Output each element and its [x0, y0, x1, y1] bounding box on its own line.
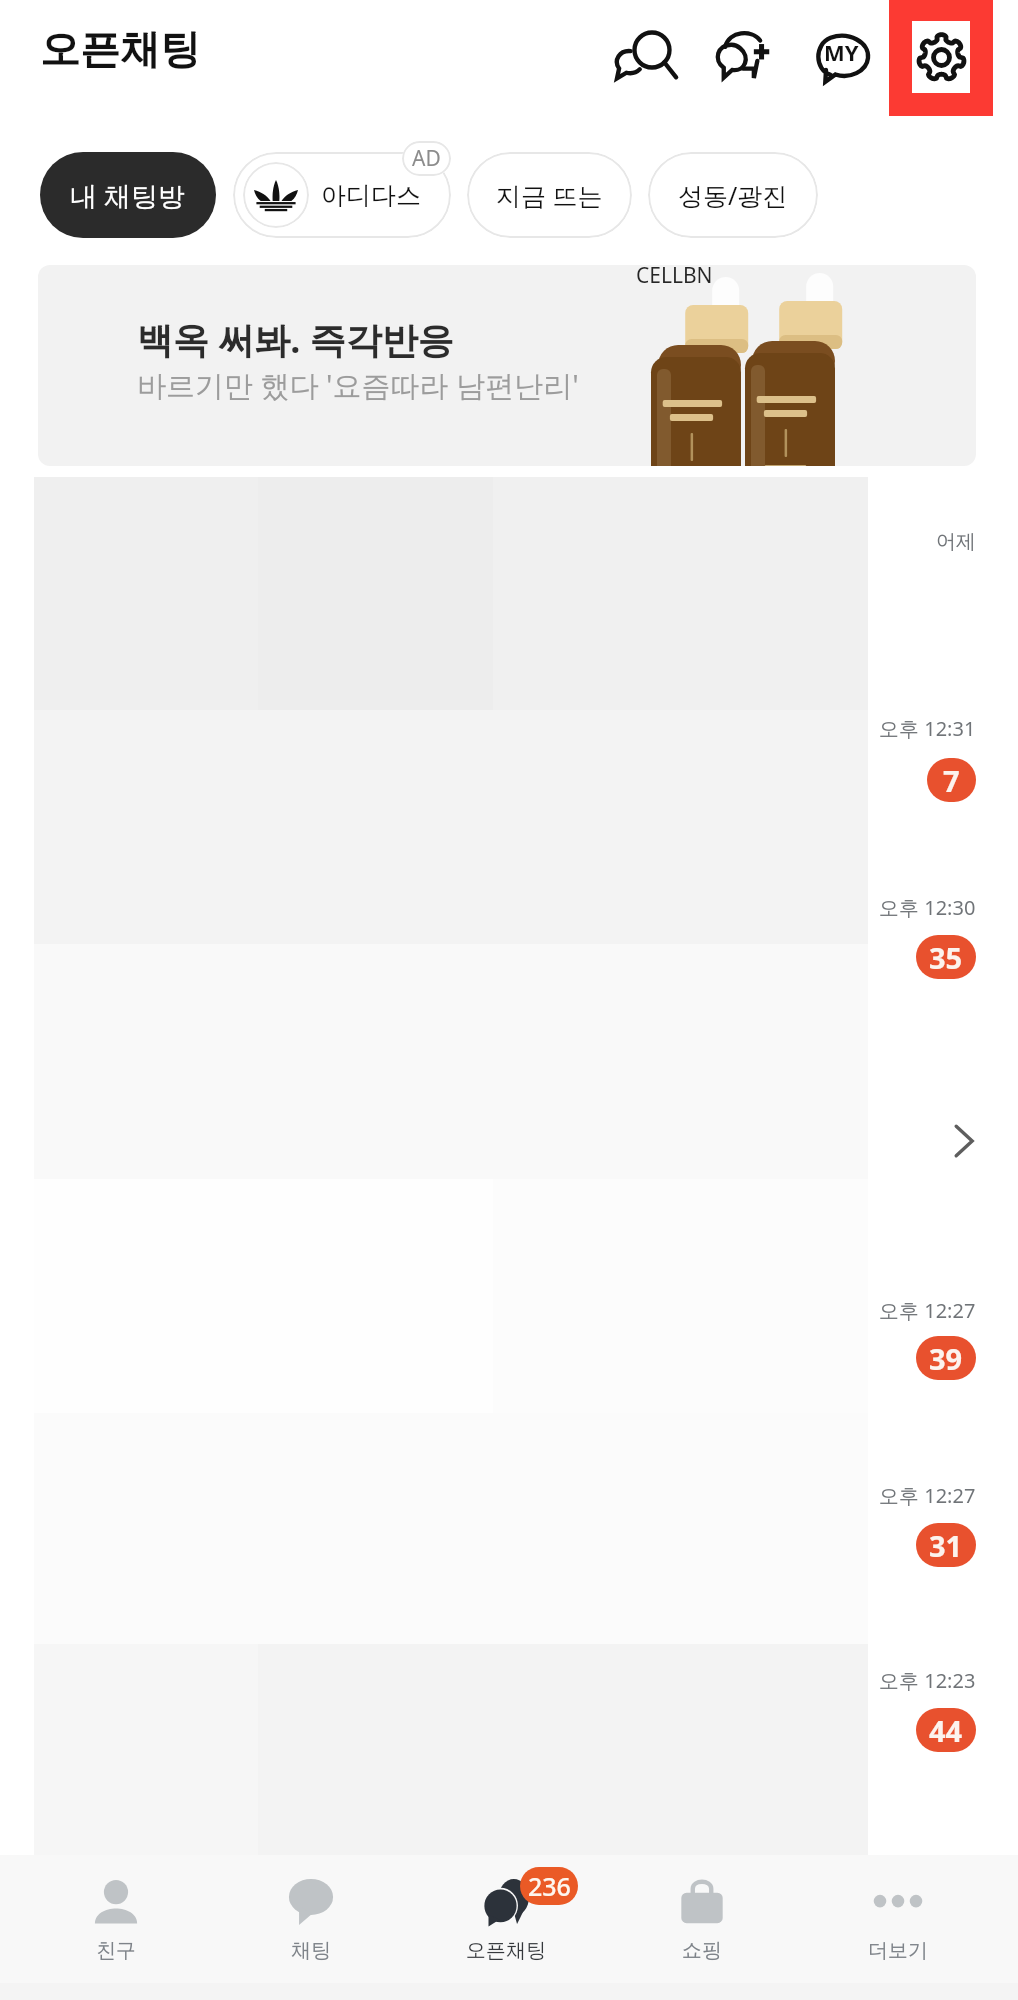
button[interactable]: Settings	[889, 0, 993, 116]
staticText: CELLBN	[636, 265, 713, 290]
staticText: 어제	[936, 529, 976, 554]
staticText: 아디다스	[321, 180, 421, 211]
staticText: 지금 뜨는	[496, 178, 603, 212]
staticText: 내 채팅방	[70, 177, 186, 214]
button[interactable]: Search	[602, 14, 688, 100]
staticText: 오후 12:23	[879, 1667, 976, 1694]
button[interactable]: 더보기	[800, 1855, 996, 1983]
staticText: 236	[528, 1869, 571, 1903]
button[interactable]: More	[941, 1119, 985, 1163]
staticText: 바르기만 했다 '요즘따라 남편난리'	[137, 365, 579, 405]
staticText: 성동/광진	[678, 178, 788, 212]
staticText: 오후 12:31	[879, 715, 976, 742]
button[interactable]: 친구	[18, 1855, 213, 1983]
staticText: 쇼핑	[682, 1938, 722, 1963]
button[interactable]: 채팅	[213, 1855, 408, 1983]
staticText: 44	[929, 1711, 963, 1750]
button[interactable]	[0, 1179, 1018, 1413]
staticText: MY	[824, 37, 859, 67]
staticText: AD	[412, 144, 441, 173]
staticText: 35	[929, 938, 963, 977]
staticText: 7	[943, 761, 960, 800]
button[interactable]: 백옥 써봐. 즉각반응	[38, 265, 976, 466]
button[interactable]: 내 채팅방	[40, 152, 216, 238]
button[interactable]	[0, 1413, 1018, 1644]
button[interactable]: 지금 뜨는	[467, 152, 632, 238]
staticText: 오후 12:27	[879, 1482, 976, 1509]
button[interactable]: My profile	[797, 14, 883, 100]
staticText: 오픈채팅	[466, 1938, 546, 1963]
staticText: 31	[929, 1526, 963, 1565]
button[interactable]: 236	[408, 1855, 604, 1983]
staticText: 오후 12:27	[879, 1297, 976, 1324]
button[interactable]: 아디다스	[233, 152, 451, 238]
button[interactable]	[0, 1644, 1018, 1855]
button[interactable]	[0, 710, 1018, 944]
button[interactable]: New chat	[700, 14, 786, 100]
button[interactable]	[0, 944, 1018, 1179]
button[interactable]: 성동/광진	[648, 152, 818, 238]
staticText: 백옥 써봐. 즉각반응	[137, 315, 454, 364]
staticText: 채팅	[291, 1938, 331, 1963]
staticText: 오픈채팅	[40, 24, 200, 74]
staticText: 친구	[96, 1938, 136, 1963]
button[interactable]	[0, 477, 1018, 710]
staticText: 오후 12:30	[879, 894, 976, 921]
staticText: 더보기	[868, 1938, 928, 1963]
staticText: 39	[929, 1339, 963, 1378]
button[interactable]: 쇼핑	[604, 1855, 800, 1983]
